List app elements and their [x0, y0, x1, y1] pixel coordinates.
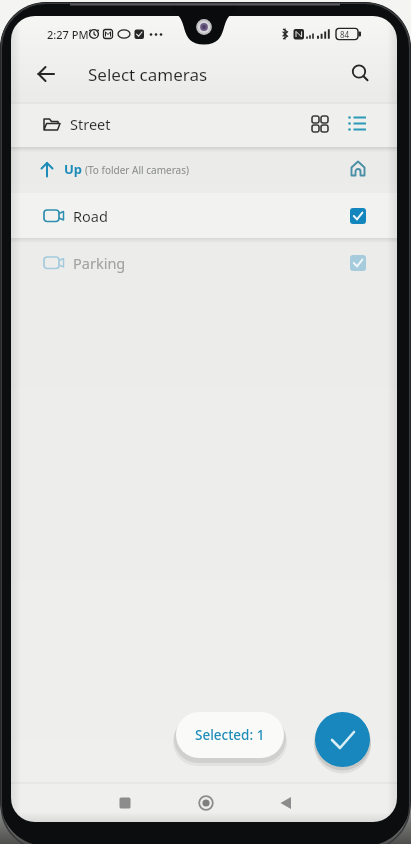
staticText: Street	[70, 114, 111, 134]
button[interactable]	[342, 108, 372, 138]
button[interactable]	[11, 193, 397, 238]
button[interactable]	[11, 243, 397, 288]
button[interactable]	[191, 788, 221, 818]
staticText: Road	[73, 206, 108, 226]
staticText: 2:27 PM	[47, 27, 89, 42]
button[interactable]: Selected: 1	[176, 712, 284, 758]
staticText: (To folder All cameras)	[85, 163, 189, 177]
button[interactable]	[11, 147, 397, 193]
button[interactable]	[345, 59, 375, 89]
button[interactable]	[341, 246, 375, 280]
button[interactable]	[341, 199, 375, 233]
button[interactable]	[31, 59, 61, 89]
button[interactable]	[305, 108, 335, 138]
staticText: 84	[340, 29, 350, 40]
button[interactable]	[271, 788, 301, 818]
staticText: Selected: 1	[195, 726, 265, 744]
button[interactable]	[315, 712, 370, 767]
button[interactable]	[110, 788, 140, 818]
staticText: Up	[64, 160, 83, 178]
button[interactable]	[11, 103, 397, 147]
staticText: Parking	[73, 253, 126, 273]
staticText: Select cameras	[88, 63, 208, 86]
